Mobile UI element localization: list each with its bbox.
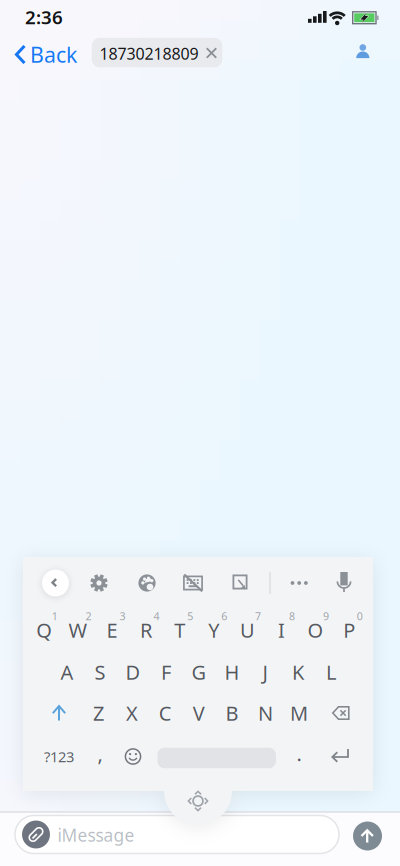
staticText: U bbox=[240, 617, 255, 643]
button[interactable]: M bbox=[282, 693, 315, 733]
staticText: S bbox=[94, 659, 105, 685]
button[interactable]: Contact bbox=[353, 43, 373, 59]
staticText: . bbox=[296, 740, 301, 767]
staticText: C bbox=[159, 700, 172, 726]
staticText: 8 bbox=[289, 609, 295, 623]
staticText: O bbox=[307, 617, 323, 643]
button[interactable]: Clear text bbox=[207, 48, 216, 58]
staticText: N bbox=[258, 700, 273, 726]
button[interactable]: E bbox=[95, 610, 128, 650]
button[interactable]: P bbox=[333, 610, 366, 650]
button[interactable]: iMessage text field bbox=[15, 815, 339, 853]
staticText: , bbox=[97, 740, 102, 767]
button[interactable]: Back bbox=[13, 39, 77, 69]
staticText: 3 bbox=[119, 609, 125, 623]
staticText: 6 bbox=[221, 609, 227, 623]
staticText: J bbox=[262, 659, 267, 685]
button[interactable]: R bbox=[129, 610, 162, 650]
button[interactable]: N bbox=[249, 693, 282, 733]
button[interactable]: Themes bbox=[138, 574, 156, 592]
staticText: P bbox=[343, 617, 355, 643]
staticText: T bbox=[174, 617, 185, 643]
button[interactable]: Emoji bbox=[125, 748, 141, 764]
staticText: M bbox=[290, 700, 308, 726]
button[interactable]: Y bbox=[197, 610, 230, 650]
staticText: E bbox=[106, 617, 117, 643]
staticText: A bbox=[60, 659, 73, 685]
button[interactable]: W bbox=[62, 610, 95, 650]
button[interactable]: Q bbox=[28, 610, 61, 650]
button[interactable]: Send bbox=[353, 821, 382, 850]
button[interactable]: Return bbox=[331, 749, 348, 762]
staticText: 2 bbox=[86, 609, 92, 623]
button[interactable]: Shift bbox=[52, 705, 66, 721]
staticText: H bbox=[224, 659, 239, 685]
staticText: X bbox=[126, 700, 138, 726]
button[interactable]: T bbox=[163, 610, 196, 650]
button[interactable]: Z bbox=[82, 693, 115, 733]
staticText: 2:36 bbox=[25, 5, 63, 29]
staticText: G bbox=[191, 659, 206, 685]
staticText: 5 bbox=[187, 609, 193, 623]
button[interactable]: L bbox=[314, 652, 347, 692]
staticText: Z bbox=[93, 700, 104, 726]
button[interactable]: Move keyboard bbox=[188, 791, 208, 811]
staticText: R bbox=[140, 617, 152, 643]
staticText: W bbox=[69, 617, 88, 643]
button[interactable]: More options bbox=[290, 581, 307, 585]
staticText: V bbox=[193, 700, 205, 726]
button[interactable]: Keyboard settings bbox=[89, 573, 109, 593]
staticText: Y bbox=[208, 617, 219, 643]
button[interactable]: K bbox=[281, 652, 314, 692]
button[interactable]: Delete bbox=[332, 706, 350, 720]
staticText: iMessage bbox=[57, 823, 134, 846]
button[interactable]: ?123 bbox=[39, 738, 79, 774]
button[interactable]: Resize keyboard bbox=[232, 574, 247, 590]
button[interactable]: G bbox=[182, 652, 215, 692]
button[interactable]: J bbox=[248, 652, 281, 692]
staticText: 0 bbox=[357, 609, 363, 623]
staticText: B bbox=[226, 700, 239, 726]
staticText: Q bbox=[36, 617, 52, 643]
button[interactable]: F bbox=[149, 652, 182, 692]
staticText: ?123 bbox=[44, 747, 74, 766]
staticText: 1 bbox=[52, 609, 58, 623]
button[interactable]: B bbox=[216, 693, 249, 733]
staticText: K bbox=[292, 659, 304, 685]
button[interactable]: , bbox=[83, 733, 116, 773]
button[interactable]: D bbox=[116, 652, 149, 692]
button[interactable]: Back bbox=[42, 569, 69, 596]
staticText: I bbox=[278, 617, 285, 643]
button[interactable]: S bbox=[83, 652, 116, 692]
button[interactable]: H bbox=[215, 652, 248, 692]
staticText: L bbox=[326, 659, 336, 685]
button[interactable]: . bbox=[282, 733, 315, 773]
staticText: F bbox=[161, 659, 171, 685]
staticText: 4 bbox=[153, 609, 159, 623]
button[interactable]: Voice input bbox=[336, 572, 351, 592]
staticText: 7 bbox=[255, 609, 261, 623]
button[interactable]: X bbox=[115, 693, 148, 733]
button[interactable]: A bbox=[50, 652, 83, 692]
staticText: 9 bbox=[323, 609, 329, 623]
button[interactable]: U bbox=[231, 610, 264, 650]
button[interactable]: Hide keyboard bbox=[183, 573, 203, 592]
staticText: 18730218809 bbox=[99, 43, 198, 64]
button[interactable]: V bbox=[182, 693, 215, 733]
button[interactable]: I bbox=[265, 610, 298, 650]
button[interactable]: C bbox=[149, 693, 182, 733]
staticText: D bbox=[125, 659, 140, 685]
button[interactable]: O bbox=[299, 610, 332, 650]
staticText: Back bbox=[30, 40, 77, 69]
